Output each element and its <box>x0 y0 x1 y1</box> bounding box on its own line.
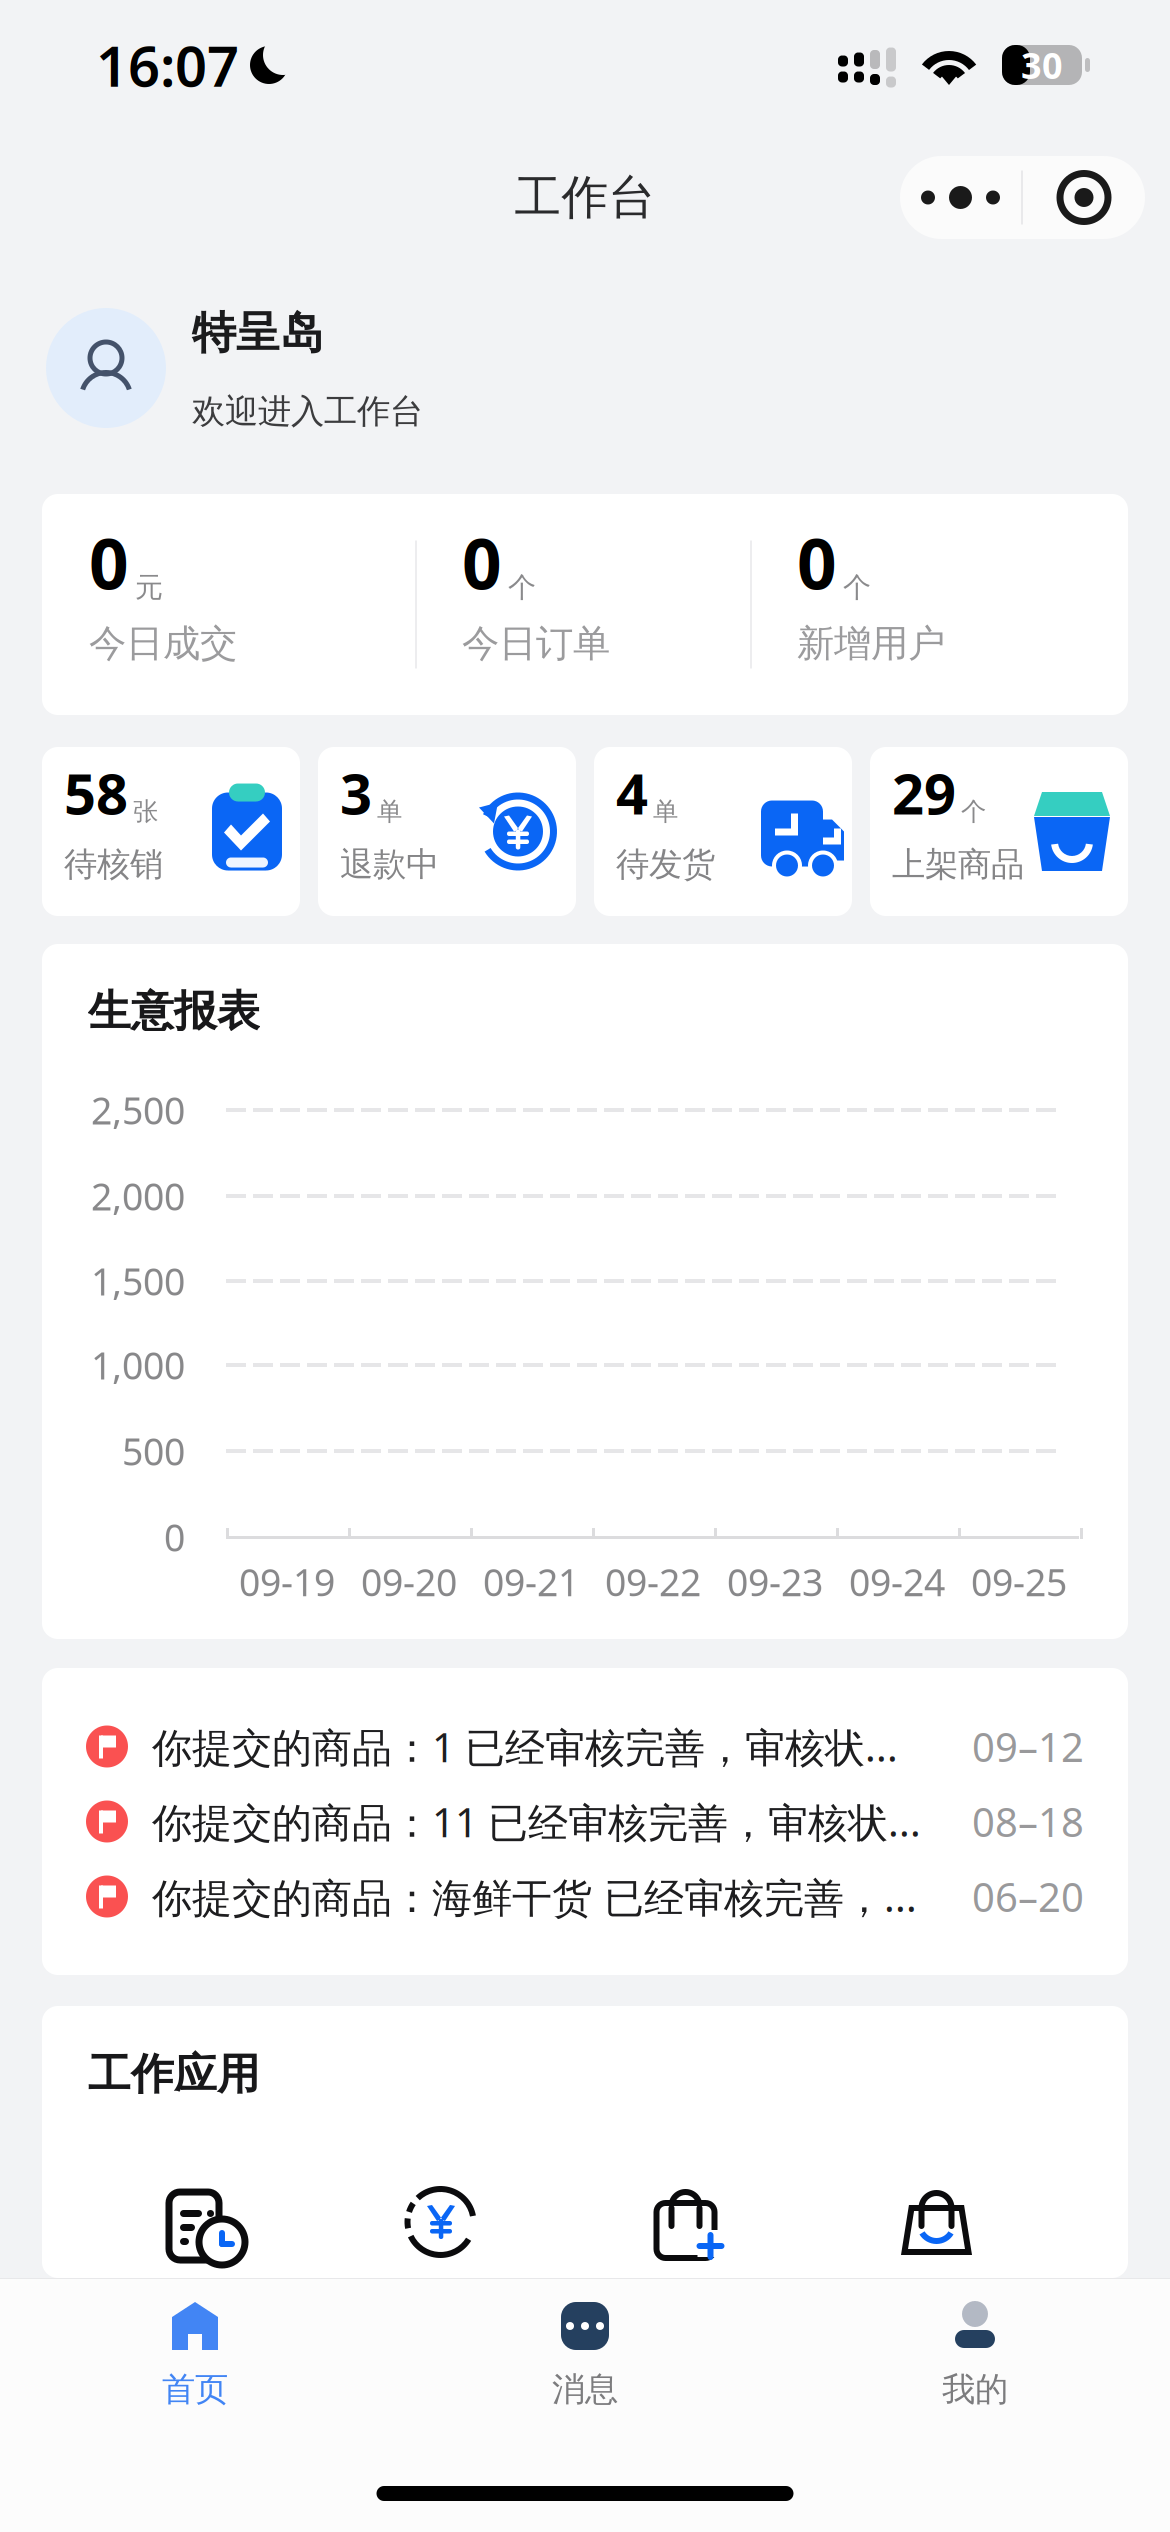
staticText: 上架商品 <box>892 844 1024 885</box>
staticText: 个 <box>843 570 871 605</box>
staticText: 08–18 <box>972 1795 1084 1848</box>
button[interactable]: 29 <box>870 747 1128 916</box>
staticText: 09-21 <box>483 1557 579 1607</box>
staticText: 09-20 <box>361 1557 457 1607</box>
staticText: 单 <box>653 796 678 827</box>
staticText: 待核销 <box>64 844 163 885</box>
staticText: 06–20 <box>972 1870 1084 1923</box>
button[interactable]: 0 <box>752 494 1128 715</box>
staticText: 工作应用 <box>88 2048 260 2100</box>
staticText: 元 <box>135 570 163 605</box>
staticText: 2,000 <box>91 1171 185 1221</box>
staticText: 欢迎进入工作台 <box>192 391 423 432</box>
staticText: 个 <box>508 570 536 605</box>
staticText: 16:07 <box>96 28 239 102</box>
staticText: 今日订单 <box>462 621 610 666</box>
staticText: 29 <box>892 756 956 830</box>
staticText: 你提交的商品：11 已经审核完善，审核状态… <box>152 1795 922 1848</box>
button[interactable]: 0 <box>42 494 415 715</box>
staticText: 0 <box>462 516 502 609</box>
staticText: 首页 <box>162 2369 228 2410</box>
button[interactable]: 首页 <box>0 2279 390 2532</box>
button[interactable]: 0 <box>417 494 750 715</box>
staticText: 单 <box>377 796 402 827</box>
staticText: 09-24 <box>849 1557 945 1607</box>
staticText: 09-23 <box>727 1557 823 1607</box>
staticText: 09–12 <box>972 1720 1084 1773</box>
button[interactable]: 消息 <box>390 2279 780 2532</box>
staticText: 退款中 <box>340 844 439 885</box>
button[interactable]: 添加商品 <box>565 2174 813 2270</box>
button[interactable]: 退款 <box>317 2174 565 2270</box>
staticText: 500 <box>122 1426 185 1476</box>
staticText: 0 <box>797 516 837 609</box>
staticText: 30 <box>1021 41 1063 89</box>
button[interactable]: 你提交的商品：11 已经审核完善，审核状态… <box>42 1784 1128 1859</box>
staticText: 09-25 <box>971 1557 1067 1607</box>
staticText: 你提交的商品：海鲜干货 已经审核完善，审… <box>152 1870 922 1923</box>
button[interactable]: 你提交的商品：1 已经审核完善，审核状态为… <box>42 1709 1128 1784</box>
staticText: 新增用户 <box>797 621 945 666</box>
staticText: 消息 <box>552 2369 618 2410</box>
staticText: 1,000 <box>91 1340 185 1390</box>
button[interactable]: Close mini program <box>1023 156 1145 239</box>
staticText: 你提交的商品：1 已经审核完善，审核状态为… <box>152 1720 922 1773</box>
staticText: 工作台 <box>514 169 655 226</box>
staticText: 4 <box>616 756 648 830</box>
button[interactable]: 58 <box>42 747 300 916</box>
button[interactable]: 你提交的商品：海鲜干货 已经审核完善，审… <box>42 1859 1128 1934</box>
staticText: 我的 <box>942 2369 1008 2410</box>
staticText: 生意报表 <box>88 985 260 1037</box>
staticText: 0 <box>89 516 129 609</box>
staticText: 待发货 <box>616 844 715 885</box>
button[interactable]: 订单记录 <box>69 2174 317 2270</box>
staticText: 特呈岛 <box>192 306 324 360</box>
staticText: 09-22 <box>605 1557 701 1607</box>
staticText: 09-19 <box>239 1557 335 1607</box>
button[interactable]: 商品管理 <box>813 2174 1061 2270</box>
staticText: 今日成交 <box>89 621 237 666</box>
staticText: 张 <box>133 796 158 827</box>
staticText: 0 <box>164 1512 185 1562</box>
staticText: 个 <box>961 796 986 827</box>
button[interactable]: 3 <box>318 747 576 916</box>
staticText: 58 <box>64 756 128 830</box>
staticText: 1,500 <box>91 1256 185 1306</box>
button[interactable]: More options <box>900 156 1021 239</box>
button[interactable]: 我的 <box>780 2279 1170 2532</box>
button[interactable]: 特呈岛 <box>0 308 1170 428</box>
button[interactable]: 4 <box>594 747 852 916</box>
staticText: 2,500 <box>91 1085 185 1135</box>
staticText: 3 <box>340 756 372 830</box>
